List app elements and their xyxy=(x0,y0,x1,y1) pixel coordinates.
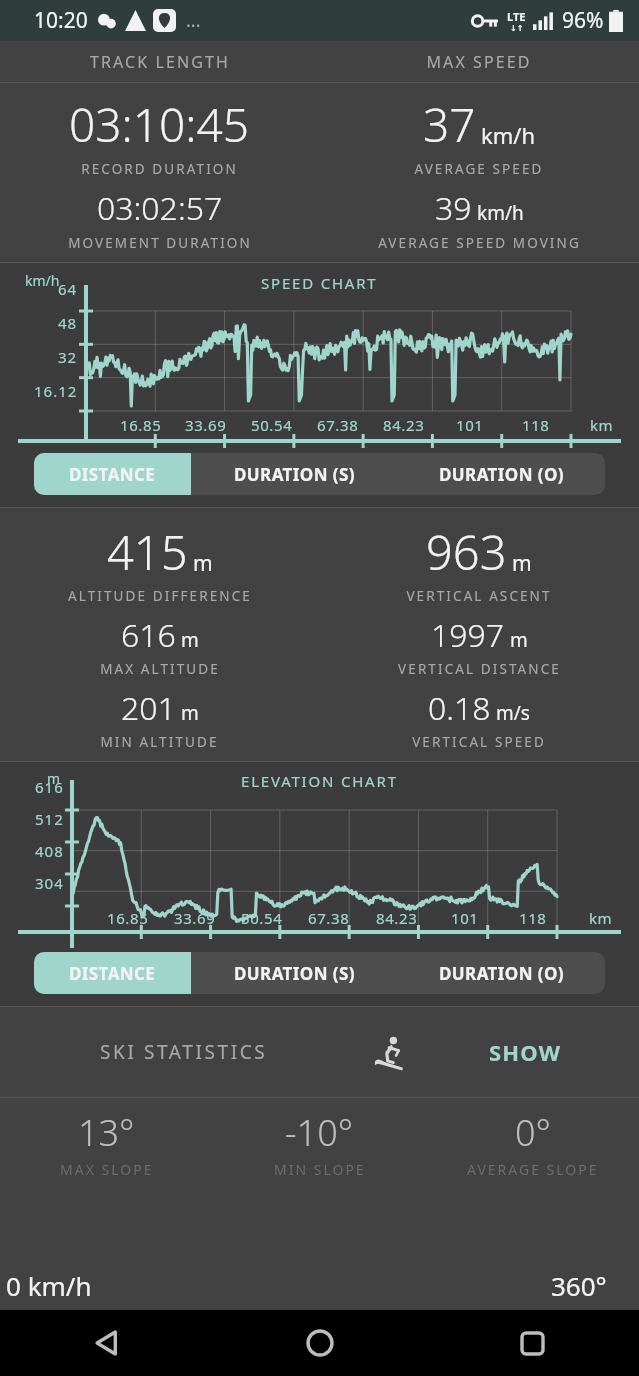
staticText: 1997 xyxy=(431,613,505,657)
staticText: ↓↑ xyxy=(510,24,524,33)
staticText: 0.18 xyxy=(428,686,491,730)
staticText: AVERAGE SLOPE xyxy=(467,1160,599,1179)
staticText: m xyxy=(47,769,61,788)
staticText: SHOW xyxy=(489,1037,562,1067)
staticText: RECORD DURATION xyxy=(81,160,238,178)
staticText: DURATION (O) xyxy=(439,962,564,985)
staticText: DISTANCE xyxy=(69,463,156,486)
staticText: DURATION (S) xyxy=(234,463,355,486)
staticText: 360° xyxy=(551,1268,607,1303)
staticText: SKI STATISTICS xyxy=(100,1039,268,1065)
staticText: 10:20 xyxy=(34,6,88,35)
staticText: 16.12 xyxy=(34,381,78,401)
staticText: 03:10:45 xyxy=(69,93,250,156)
staticText: 415 xyxy=(107,520,188,584)
staticText: 101 xyxy=(451,908,479,928)
button[interactable]: DISTANCE xyxy=(34,952,191,994)
staticText: VERTICAL DISTANCE xyxy=(398,660,561,678)
staticText: m xyxy=(510,627,528,653)
staticText: 33.69 xyxy=(174,908,216,928)
staticText: km/h xyxy=(477,200,524,226)
staticText: 963 xyxy=(426,520,507,584)
staticText: km/h xyxy=(25,271,60,290)
staticText: DISTANCE xyxy=(69,962,156,985)
button[interactable]: DISTANCE xyxy=(34,453,191,495)
button[interactable]: SKI STATISTICS xyxy=(0,1007,639,1097)
button[interactable]: DURATION (S) xyxy=(191,453,398,495)
staticText: m xyxy=(181,700,199,726)
button[interactable]: Back xyxy=(0,1310,213,1376)
staticText: MIN ALTITUDE xyxy=(100,733,219,751)
staticText: 16.85 xyxy=(120,415,162,435)
staticText: 118 xyxy=(522,415,550,435)
staticText: 32 xyxy=(58,347,78,367)
staticText: 03:02:57 xyxy=(97,186,223,230)
staticText: DURATION (O) xyxy=(439,463,564,486)
button[interactable]: Home xyxy=(213,1310,426,1376)
staticText: 48 xyxy=(58,313,78,333)
staticText: 13° xyxy=(78,1108,135,1157)
staticText: 67.38 xyxy=(308,908,350,928)
staticText: 118 xyxy=(519,908,547,928)
staticText: km/h xyxy=(481,120,536,150)
staticText: 408 xyxy=(35,841,64,861)
button[interactable]: DURATION (O) xyxy=(398,952,605,994)
staticText: MAX SLOPE xyxy=(60,1160,154,1179)
staticText: m xyxy=(512,549,532,578)
staticText: 201 xyxy=(121,686,176,730)
button[interactable]: DURATION (O) xyxy=(398,453,605,495)
staticText: 64 xyxy=(58,279,78,299)
staticText: MAX ALTITUDE xyxy=(100,660,220,678)
staticText: 50.54 xyxy=(241,908,283,928)
staticText: ... xyxy=(186,8,201,33)
staticText: 512 xyxy=(35,809,64,829)
other: Ski statistics xyxy=(367,1030,411,1074)
staticText: 16.85 xyxy=(107,908,149,928)
staticText: -10° xyxy=(285,1108,354,1157)
staticText: km xyxy=(589,908,613,928)
staticText: AVERAGE SPEED MOVING xyxy=(378,234,581,252)
staticText: TRACK LENGTH xyxy=(90,51,230,73)
staticText: 84.23 xyxy=(383,415,425,435)
staticText: DURATION (S) xyxy=(234,962,355,985)
staticText: 33.69 xyxy=(185,415,227,435)
button[interactable]: Recent apps xyxy=(426,1310,639,1376)
staticText: m/s xyxy=(496,700,530,726)
staticText: 67.38 xyxy=(317,415,359,435)
staticText: 0° xyxy=(515,1108,551,1157)
staticText: 96% xyxy=(562,6,604,35)
staticText: ALTITUDE DIFFERENCE xyxy=(68,587,252,605)
staticText: 50.54 xyxy=(251,415,293,435)
staticText: 616 xyxy=(35,777,64,797)
staticText: ELEVATION CHART xyxy=(241,771,398,791)
staticText: km xyxy=(590,415,614,435)
button[interactable]: DURATION (S) xyxy=(191,952,398,994)
staticText: m xyxy=(193,549,213,578)
staticText: 101 xyxy=(456,415,484,435)
staticText: m xyxy=(181,627,199,653)
staticText: 304 xyxy=(35,873,64,893)
staticText: LTE xyxy=(507,9,526,24)
staticText: 39 xyxy=(435,186,472,230)
staticText: MIN SLOPE xyxy=(274,1160,366,1179)
staticText: MAX SPEED xyxy=(426,51,532,73)
staticText: AVERAGE SPEED xyxy=(414,160,544,178)
staticText: 616 xyxy=(121,613,176,657)
staticText: 37 xyxy=(423,93,476,156)
staticText: VERTICAL SPEED xyxy=(412,733,546,751)
staticText: 84.23 xyxy=(376,908,418,928)
staticText: MOVEMENT DURATION xyxy=(68,234,252,252)
staticText: 0 km/h xyxy=(6,1268,92,1303)
staticText: VERTICAL ASCENT xyxy=(406,587,552,605)
staticText: SPEED CHART xyxy=(261,273,378,293)
